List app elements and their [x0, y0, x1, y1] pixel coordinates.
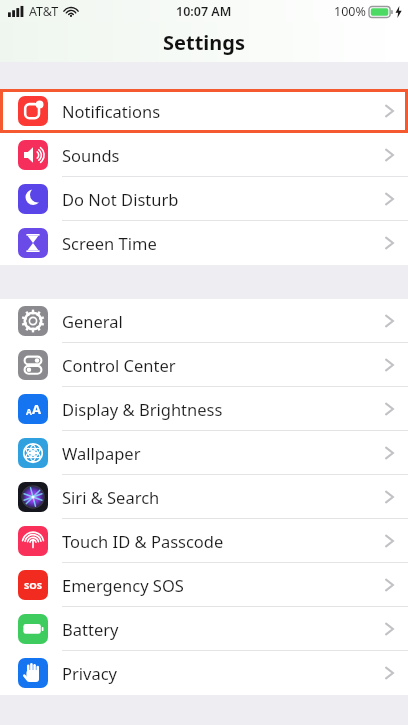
button[interactable]: SOS — [0, 563, 408, 607]
button[interactable]: Siri & Search — [0, 475, 408, 519]
staticText: Privacy — [62, 662, 118, 684]
staticText: Control Center — [62, 354, 176, 376]
staticText: Emergency SOS — [62, 574, 184, 596]
staticText: SOS — [24, 579, 42, 592]
staticText: Siri & Search — [62, 486, 160, 508]
button[interactable]: Control Center — [0, 343, 408, 387]
button[interactable]: General — [0, 299, 408, 343]
staticText: Notifications — [62, 100, 161, 122]
button[interactable]: Notifications — [0, 89, 408, 133]
staticText: A — [32, 400, 41, 418]
staticText: Settings — [163, 29, 245, 56]
staticText: Sounds — [62, 144, 120, 166]
button[interactable]: Touch ID & Passcode — [0, 519, 408, 563]
staticText: General — [62, 310, 123, 332]
button[interactable]: Wallpaper — [0, 431, 408, 475]
staticText: A — [26, 406, 32, 418]
staticText: Battery — [62, 618, 119, 640]
button[interactable]: Screen Time — [0, 221, 408, 265]
button[interactable]: Do Not Disturb — [0, 177, 408, 221]
button[interactable]: Battery — [0, 607, 408, 651]
staticText: Display & Brightness — [62, 398, 223, 420]
staticText: Wallpaper — [62, 442, 141, 464]
button[interactable]: Privacy — [0, 651, 408, 695]
staticText: 100% — [334, 3, 366, 20]
staticText: Touch ID & Passcode — [62, 530, 224, 552]
staticText: AT&T — [29, 3, 59, 20]
staticText: Do Not Disturb — [62, 188, 179, 210]
button[interactable]: A — [0, 387, 408, 431]
staticText: 10:07 AM — [176, 3, 232, 20]
button[interactable]: Sounds — [0, 133, 408, 177]
staticText: Screen Time — [62, 232, 157, 254]
